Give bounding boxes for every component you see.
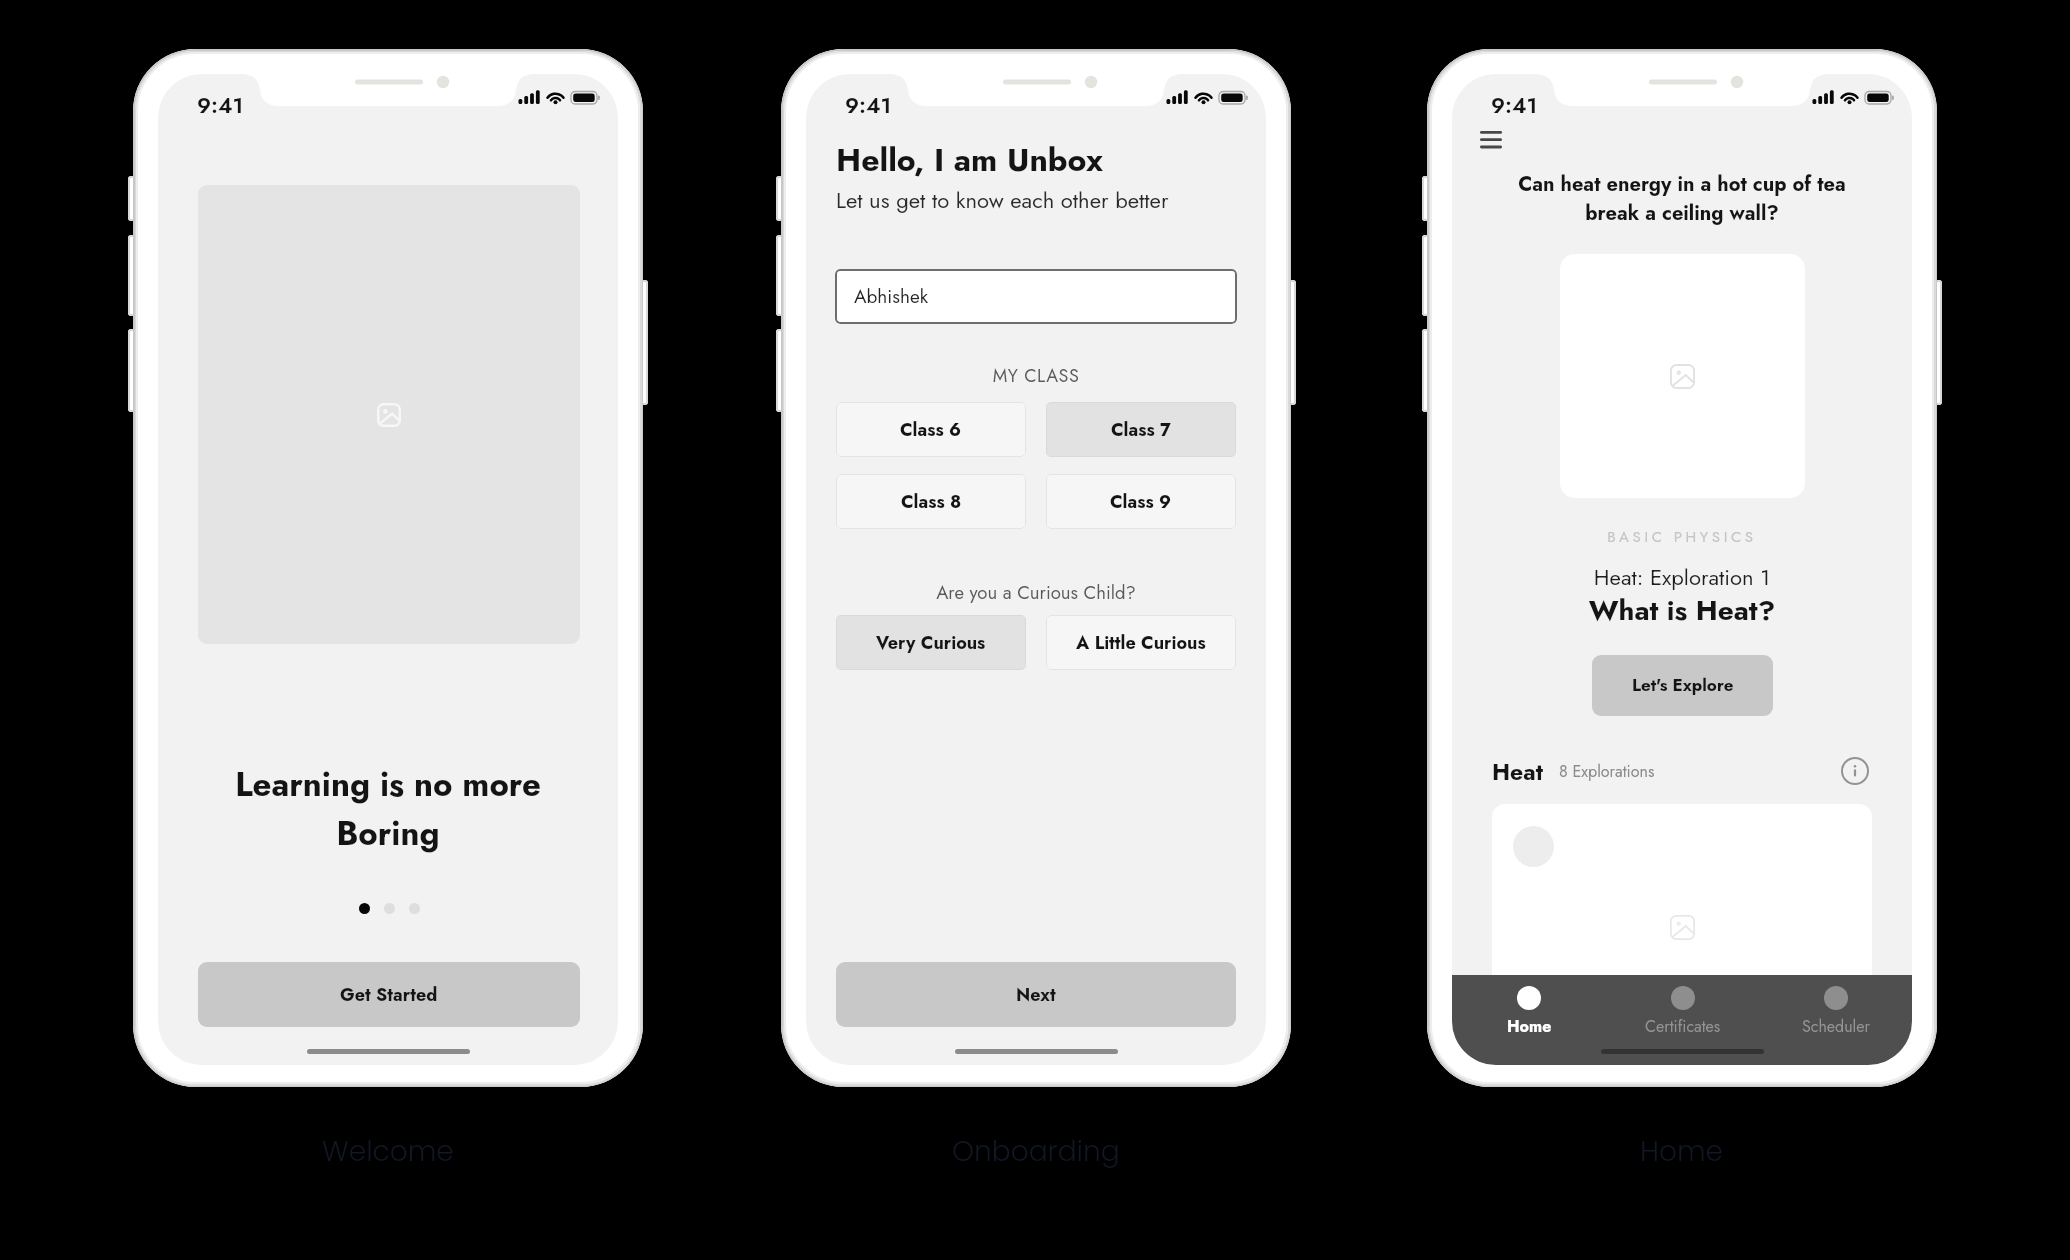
button[interactable]: Next <box>836 962 1236 1027</box>
button[interactable]: Home <box>1452 975 1606 1045</box>
button[interactable]: Scheduler <box>1759 975 1912 1045</box>
button[interactable]: Menu <box>1469 122 1513 158</box>
staticText: Heat: Exploration 1 <box>1452 561 1912 593</box>
staticText: Home <box>1640 1132 1724 1171</box>
button[interactable]: Get Started <box>198 962 580 1027</box>
staticText: Scheduler <box>1802 1015 1870 1038</box>
button[interactable]: Class 9 <box>1046 474 1236 529</box>
button[interactable]: Certificates <box>1606 975 1759 1045</box>
staticText: Learning is no more Boring <box>158 761 618 858</box>
staticText: Let us get to know each other better <box>836 184 1169 216</box>
staticText: What is Heat? <box>1452 590 1912 630</box>
staticText: MY CLASS <box>806 363 1266 389</box>
staticText: Hello, I am Unbox <box>836 137 1103 183</box>
staticText: 9:41 <box>197 89 244 121</box>
button[interactable]: Class 8 <box>836 474 1026 529</box>
staticText: Welcome <box>322 1132 454 1171</box>
staticText: Class 8 <box>901 489 962 515</box>
staticText: Home <box>1507 1015 1552 1038</box>
staticText: Heat <box>1492 755 1543 788</box>
button[interactable]: Abhishek <box>835 269 1237 324</box>
staticText: Abhishek <box>854 283 929 310</box>
staticText: Let's Explore <box>1632 673 1734 698</box>
staticText: Certificates <box>1645 1015 1721 1038</box>
staticText: Class 7 <box>1111 417 1171 443</box>
button[interactable]: Very Curious <box>836 615 1026 670</box>
staticText: A Little Curious <box>1076 630 1206 656</box>
staticText: Onboarding <box>952 1132 1120 1171</box>
staticText: 9:41 <box>1491 89 1538 121</box>
button[interactable]: A Little Curious <box>1046 615 1236 670</box>
staticText: 9:41 <box>845 89 892 121</box>
button[interactable]: Class 7 <box>1046 402 1236 457</box>
staticText: BASIC PHYSICS <box>1452 526 1912 548</box>
staticText: Next <box>1016 982 1056 1008</box>
staticText: 8 Explorations <box>1559 760 1655 783</box>
staticText: Get Started <box>340 982 438 1008</box>
button[interactable]: Information <box>1838 754 1872 788</box>
staticText: Class 6 <box>900 417 962 443</box>
staticText: Can heat energy in a hot cup of tea brea… <box>1452 170 1912 228</box>
button[interactable]: Let's Explore <box>1592 655 1773 716</box>
staticText: Class 9 <box>1110 489 1172 515</box>
button[interactable]: Class 6 <box>836 402 1026 457</box>
staticText: Very Curious <box>876 630 986 656</box>
staticText: Are you a Curious Child? <box>806 579 1266 606</box>
